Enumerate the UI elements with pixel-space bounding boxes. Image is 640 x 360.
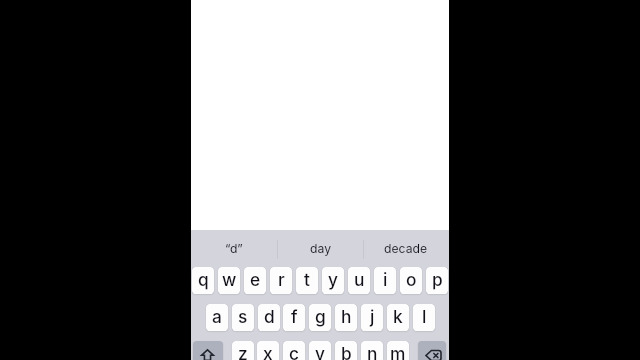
button[interactable]: d: [258, 304, 280, 331]
staticText: n: [367, 343, 378, 360]
staticText: k: [393, 306, 403, 327]
staticText: c: [289, 343, 299, 360]
button[interactable]: h: [335, 304, 357, 331]
button[interactable]: decade: [363, 230, 449, 266]
staticText: decade: [384, 241, 428, 256]
button[interactable]: n: [361, 341, 383, 360]
staticText: day: [310, 241, 331, 256]
staticText: q: [198, 269, 209, 290]
staticText: g: [315, 306, 326, 327]
staticText: v: [315, 343, 325, 360]
button[interactable]: j: [361, 304, 383, 331]
staticText: o: [406, 269, 417, 290]
button[interactable]: r: [270, 267, 292, 294]
button[interactable]: x: [257, 341, 279, 360]
button[interactable]: e: [244, 267, 266, 294]
button[interactable]: “d”: [191, 230, 277, 266]
button[interactable]: l: [413, 304, 435, 331]
staticText: u: [354, 269, 365, 290]
staticText: e: [250, 269, 261, 290]
staticText: a: [212, 306, 222, 327]
staticText: h: [341, 306, 352, 327]
staticText: z: [238, 343, 248, 360]
button[interactable]: day: [277, 230, 363, 266]
button[interactable]: i: [374, 267, 396, 294]
staticText: m: [390, 343, 406, 360]
staticText: p: [432, 269, 443, 290]
button[interactable]: f: [283, 304, 305, 331]
button[interactable]: g: [309, 304, 331, 331]
button[interactable]: a: [206, 304, 228, 331]
staticText: d: [264, 306, 275, 327]
staticText: i: [383, 269, 388, 290]
button[interactable]: c: [283, 341, 305, 360]
button[interactable]: q: [192, 267, 214, 294]
staticText: t: [304, 269, 310, 290]
button[interactable]: y: [322, 267, 344, 294]
staticText: r: [278, 269, 285, 290]
button[interactable]: s: [232, 304, 254, 331]
staticText: x: [263, 343, 273, 360]
button[interactable]: t: [296, 267, 318, 294]
button[interactable]: Backspace: [418, 341, 446, 360]
staticText: f: [291, 306, 298, 327]
staticText: “d”: [225, 241, 243, 256]
staticText: w: [222, 269, 237, 290]
button[interactable]: b: [335, 341, 357, 360]
button[interactable]: Shift: [193, 341, 223, 360]
button[interactable]: o: [400, 267, 422, 294]
button[interactable]: u: [348, 267, 370, 294]
button[interactable]: k: [387, 304, 409, 331]
button[interactable]: m: [387, 341, 409, 360]
staticText: s: [238, 306, 248, 327]
staticText: y: [328, 269, 338, 290]
button[interactable]: p: [426, 267, 448, 294]
button[interactable]: z: [232, 341, 254, 360]
button[interactable]: v: [309, 341, 331, 360]
button[interactable]: w: [218, 267, 240, 294]
staticText: l: [422, 306, 427, 327]
staticText: j: [370, 306, 375, 327]
staticText: b: [341, 343, 352, 360]
